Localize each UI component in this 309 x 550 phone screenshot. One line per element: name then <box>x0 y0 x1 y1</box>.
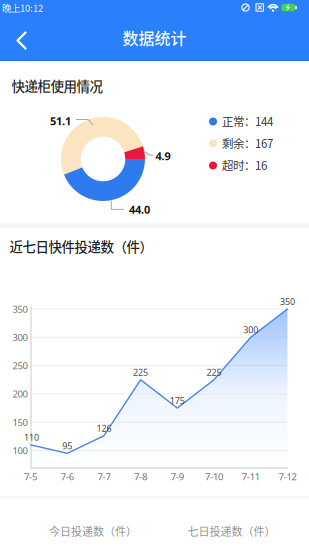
staticText: 近七日快件投递数（件） <box>9 237 152 255</box>
staticText: 7-6 <box>61 470 74 483</box>
staticText: 126 <box>96 422 111 434</box>
staticText: 175 <box>170 395 185 407</box>
staticText: 51.1 <box>50 114 71 128</box>
staticText: 剩余：167 <box>222 135 273 150</box>
staticText: 7-5 <box>24 470 37 483</box>
staticText: 正常：144 <box>222 113 273 128</box>
staticText: 7-9 <box>171 470 184 483</box>
staticText: 100 <box>12 444 27 457</box>
staticText: 今日投递数（件） <box>49 524 137 538</box>
staticText: 350 <box>280 295 295 307</box>
staticText: 7-8 <box>134 470 147 483</box>
staticText: 7-11 <box>242 470 260 483</box>
staticText: 4.9 <box>155 149 170 163</box>
staticText: 150 <box>12 416 27 428</box>
staticText: 44.0 <box>129 202 150 217</box>
staticText: 超时：16 <box>222 157 267 172</box>
button[interactable]: 返回 <box>7 22 35 58</box>
staticText: 300 <box>243 324 258 336</box>
button[interactable]: 今日投递数（件） <box>23 514 163 548</box>
staticText: 300 <box>12 331 27 344</box>
staticText: 350 <box>12 303 27 315</box>
staticText: 225 <box>133 366 148 378</box>
staticText: 110 <box>24 431 39 443</box>
staticText: 晚上10:12 <box>2 1 43 14</box>
staticText: 7-10 <box>205 470 223 483</box>
staticText: 200 <box>12 388 27 400</box>
staticText: 数据统计 <box>122 27 186 48</box>
staticText: 快递柜使用情况 <box>11 77 102 94</box>
staticText: 7-7 <box>97 470 110 483</box>
staticText: 七日投递数（件） <box>187 524 275 538</box>
staticText: 250 <box>12 359 27 372</box>
button[interactable]: 七日投递数（件） <box>161 514 301 548</box>
staticText: 225 <box>206 366 221 378</box>
staticText: 7-12 <box>278 470 296 483</box>
staticText: 95 <box>62 440 72 452</box>
